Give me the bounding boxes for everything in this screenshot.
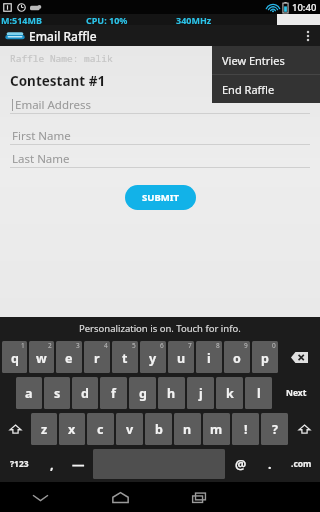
button[interactable]: 2 [29, 341, 54, 373]
button[interactable]: m [203, 413, 230, 445]
button[interactable]: a [16, 377, 42, 409]
staticText: Contestant #1 [10, 72, 106, 90]
staticText: . [268, 456, 272, 473]
staticText: 9 [244, 341, 248, 350]
button[interactable]: Last Name [10, 150, 310, 168]
staticText: M:514MB [1, 14, 42, 25]
staticText: View Entries [222, 53, 285, 68]
button[interactable]: @ [227, 449, 255, 479]
button[interactable]: 4 [84, 341, 110, 373]
button[interactable]: k [216, 377, 243, 409]
staticText: d [81, 385, 89, 402]
button[interactable]: .com [284, 449, 318, 479]
staticText: 10:40 [292, 1, 317, 14]
staticText: Last Name [12, 151, 70, 167]
staticText: i [207, 350, 211, 367]
staticText: p [261, 350, 269, 367]
staticText: e [65, 350, 73, 367]
button[interactable]: Recent apps [160, 482, 240, 512]
staticText: @ [235, 456, 247, 473]
button[interactable]: 1 [2, 341, 27, 373]
button[interactable]: s [44, 377, 70, 409]
button[interactable]: Backspace [280, 341, 318, 373]
staticText: 4 [104, 341, 108, 350]
staticText: z [41, 421, 48, 438]
button[interactable]: Shift [290, 413, 318, 445]
staticText: g [139, 385, 147, 402]
button[interactable]: ?123 [2, 449, 37, 479]
button[interactable]: Next [274, 377, 318, 409]
button[interactable]: SUBMIT [125, 185, 196, 210]
staticText: y [149, 350, 157, 367]
staticText: 1 [21, 341, 25, 350]
button[interactable]: v [116, 413, 143, 445]
button[interactable]: g [129, 377, 156, 409]
button[interactable]: First Name [10, 127, 310, 145]
button[interactable]: 7 [168, 341, 194, 373]
staticText: .com [291, 458, 312, 470]
staticText: ! [244, 421, 248, 438]
staticText: End Raffle [222, 82, 275, 97]
button[interactable]: , [39, 449, 64, 479]
staticText: j [199, 385, 203, 402]
button[interactable]: Hide keyboard [0, 482, 80, 512]
button[interactable]: ! [232, 413, 259, 445]
staticText: Email Raffle [29, 28, 97, 44]
button[interactable]: x [59, 413, 85, 445]
staticText: x [68, 421, 76, 438]
staticText: CPU: 10% [86, 14, 128, 25]
button[interactable]: View Entries [212, 46, 320, 74]
staticText: First Name [12, 128, 71, 144]
button[interactable]: 6 [140, 341, 166, 373]
button[interactable]: d [72, 377, 98, 409]
staticText: q [11, 350, 19, 367]
staticText: 2 [48, 341, 52, 350]
staticText: ?123 [10, 458, 29, 470]
button[interactable]: j [187, 377, 214, 409]
button[interactable]: Personalization is on. Touch for info. [0, 317, 320, 339]
button[interactable]: 3 [56, 341, 82, 373]
staticText: f [111, 385, 116, 402]
staticText: , [50, 456, 54, 473]
staticText: v [126, 421, 134, 438]
staticText: 5 [132, 341, 136, 350]
button[interactable]: 9 [224, 341, 250, 373]
staticText: w [36, 350, 47, 367]
button[interactable]: Email Address [10, 96, 310, 114]
button[interactable]: End Raffle [212, 75, 320, 103]
button[interactable]: Shift [2, 413, 29, 445]
staticText: ? [272, 421, 278, 438]
staticText: 340MHz [176, 14, 212, 25]
button[interactable]: ? [261, 413, 288, 445]
button[interactable]: 8 [196, 341, 222, 373]
button[interactable]: 5 [112, 341, 138, 373]
button[interactable]: n [174, 413, 201, 445]
button[interactable]: Home [80, 482, 160, 512]
staticText: 3 [76, 341, 80, 350]
button[interactable]: 0 [252, 341, 278, 373]
staticText: m [210, 421, 223, 438]
staticText: c [97, 421, 104, 438]
staticText: SUBMIT [142, 191, 179, 204]
button[interactable]: b [145, 413, 172, 445]
button[interactable]: z [31, 413, 57, 445]
staticText: u [177, 350, 186, 367]
staticText: Raffle Name: malik [10, 52, 113, 65]
button[interactable]: l [245, 377, 272, 409]
button[interactable]: . [257, 449, 282, 479]
button[interactable]: — [66, 449, 91, 479]
staticText: 7 [188, 341, 192, 350]
staticText: n [183, 421, 192, 438]
button[interactable]: h [158, 377, 185, 409]
button[interactable]: f [100, 377, 127, 409]
button[interactable]: More options [296, 25, 320, 46]
button[interactable]: c [87, 413, 114, 445]
staticText: s [54, 385, 61, 402]
staticText: Personalization is on. Touch for info. [79, 322, 241, 335]
staticText: Email Address [15, 97, 92, 113]
staticText: 0 [272, 341, 276, 350]
staticText: — [72, 456, 85, 473]
staticText: Next [286, 387, 307, 399]
